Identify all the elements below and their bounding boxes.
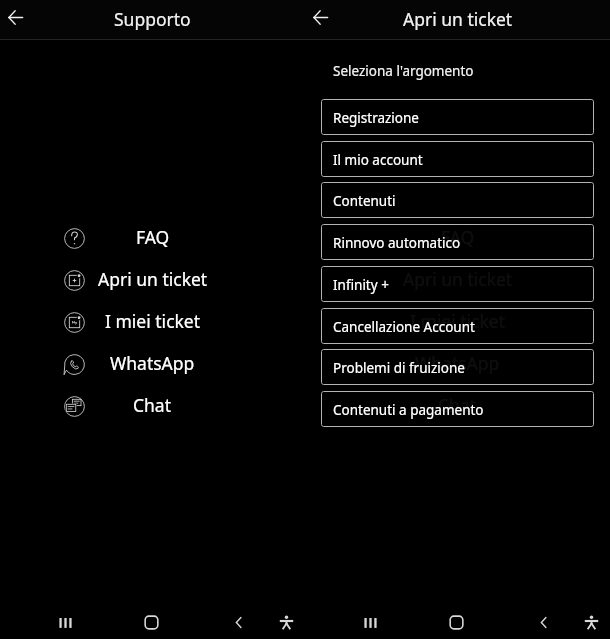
button[interactable]: Back (305, 2, 335, 32)
staticText: Apri un ticket (403, 267, 513, 291)
staticText: Infinity + (333, 276, 389, 294)
staticText: Supporto (114, 7, 191, 31)
button[interactable]: Contenuti a pagamento (321, 391, 594, 427)
button[interactable]: Apri un ticket (0, 259, 305, 301)
button[interactable]: Recents (50, 607, 80, 637)
button[interactable]: Infinity + (321, 266, 594, 302)
staticText: Chat (438, 393, 477, 417)
button[interactable]: WhatsApp (0, 343, 305, 385)
staticText: FAQ (441, 225, 475, 249)
button[interactable]: Cancellazione Account (321, 308, 594, 344)
staticText: Apri un ticket (98, 267, 208, 291)
button[interactable]: FAQ (0, 217, 305, 259)
button[interactable]: Back (0, 2, 30, 32)
button[interactable]: Back (528, 607, 558, 637)
staticText: I miei ticket (410, 309, 506, 333)
staticText: Contenuti (333, 192, 396, 210)
button[interactable]: Accessibility (271, 607, 301, 637)
staticText: Apri un ticket (403, 7, 513, 31)
staticText: Chat (133, 393, 172, 417)
staticText: Seleziona l'argomento (333, 62, 474, 80)
button[interactable]: Home (136, 607, 166, 637)
button[interactable]: Contenuti (321, 182, 594, 218)
button[interactable]: Back (223, 607, 253, 637)
staticText: Registrazione (333, 109, 419, 127)
button[interactable]: Problemi di fruizione (321, 349, 594, 385)
staticText: FAQ (136, 225, 170, 249)
button[interactable]: I miei ticket (0, 301, 305, 343)
staticText: I miei ticket (105, 309, 201, 333)
staticText: Il mio account (333, 151, 423, 169)
staticText: Contenuti a pagamento (333, 401, 484, 419)
button[interactable]: Rinnovo automatico (321, 224, 594, 260)
staticText: Rinnovo automatico (333, 234, 461, 252)
button[interactable]: Il mio account (321, 141, 594, 177)
button[interactable]: Accessibility (576, 607, 606, 637)
staticText: WhatsApp (415, 351, 500, 375)
staticText: Cancellazione Account (333, 318, 475, 336)
button[interactable]: Recents (355, 607, 385, 637)
staticText: Problemi di fruizione (333, 359, 465, 377)
staticText: WhatsApp (110, 351, 195, 375)
button[interactable]: Home (441, 607, 471, 637)
button[interactable]: Registrazione (321, 99, 594, 135)
button[interactable]: Chat (0, 385, 305, 427)
